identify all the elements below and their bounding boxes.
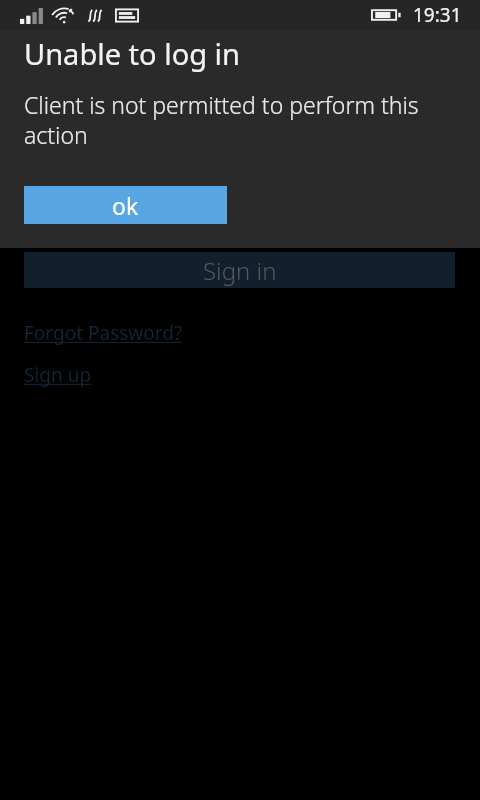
staticText: Client is not permitted to perform this … bbox=[24, 89, 460, 151]
button[interactable]: ok bbox=[24, 186, 227, 224]
staticText: Unable to log in bbox=[24, 34, 240, 73]
button[interactable]: Forgot Password? bbox=[24, 320, 183, 346]
staticText: Sign up bbox=[24, 362, 92, 388]
button[interactable]: Sign in bbox=[24, 252, 455, 288]
staticText: 19:31 bbox=[413, 2, 462, 28]
staticText: Sign in bbox=[203, 254, 277, 287]
staticText: Forgot Password? bbox=[24, 320, 183, 346]
button[interactable]: Sign up bbox=[24, 362, 92, 388]
staticText: ok bbox=[112, 190, 139, 221]
